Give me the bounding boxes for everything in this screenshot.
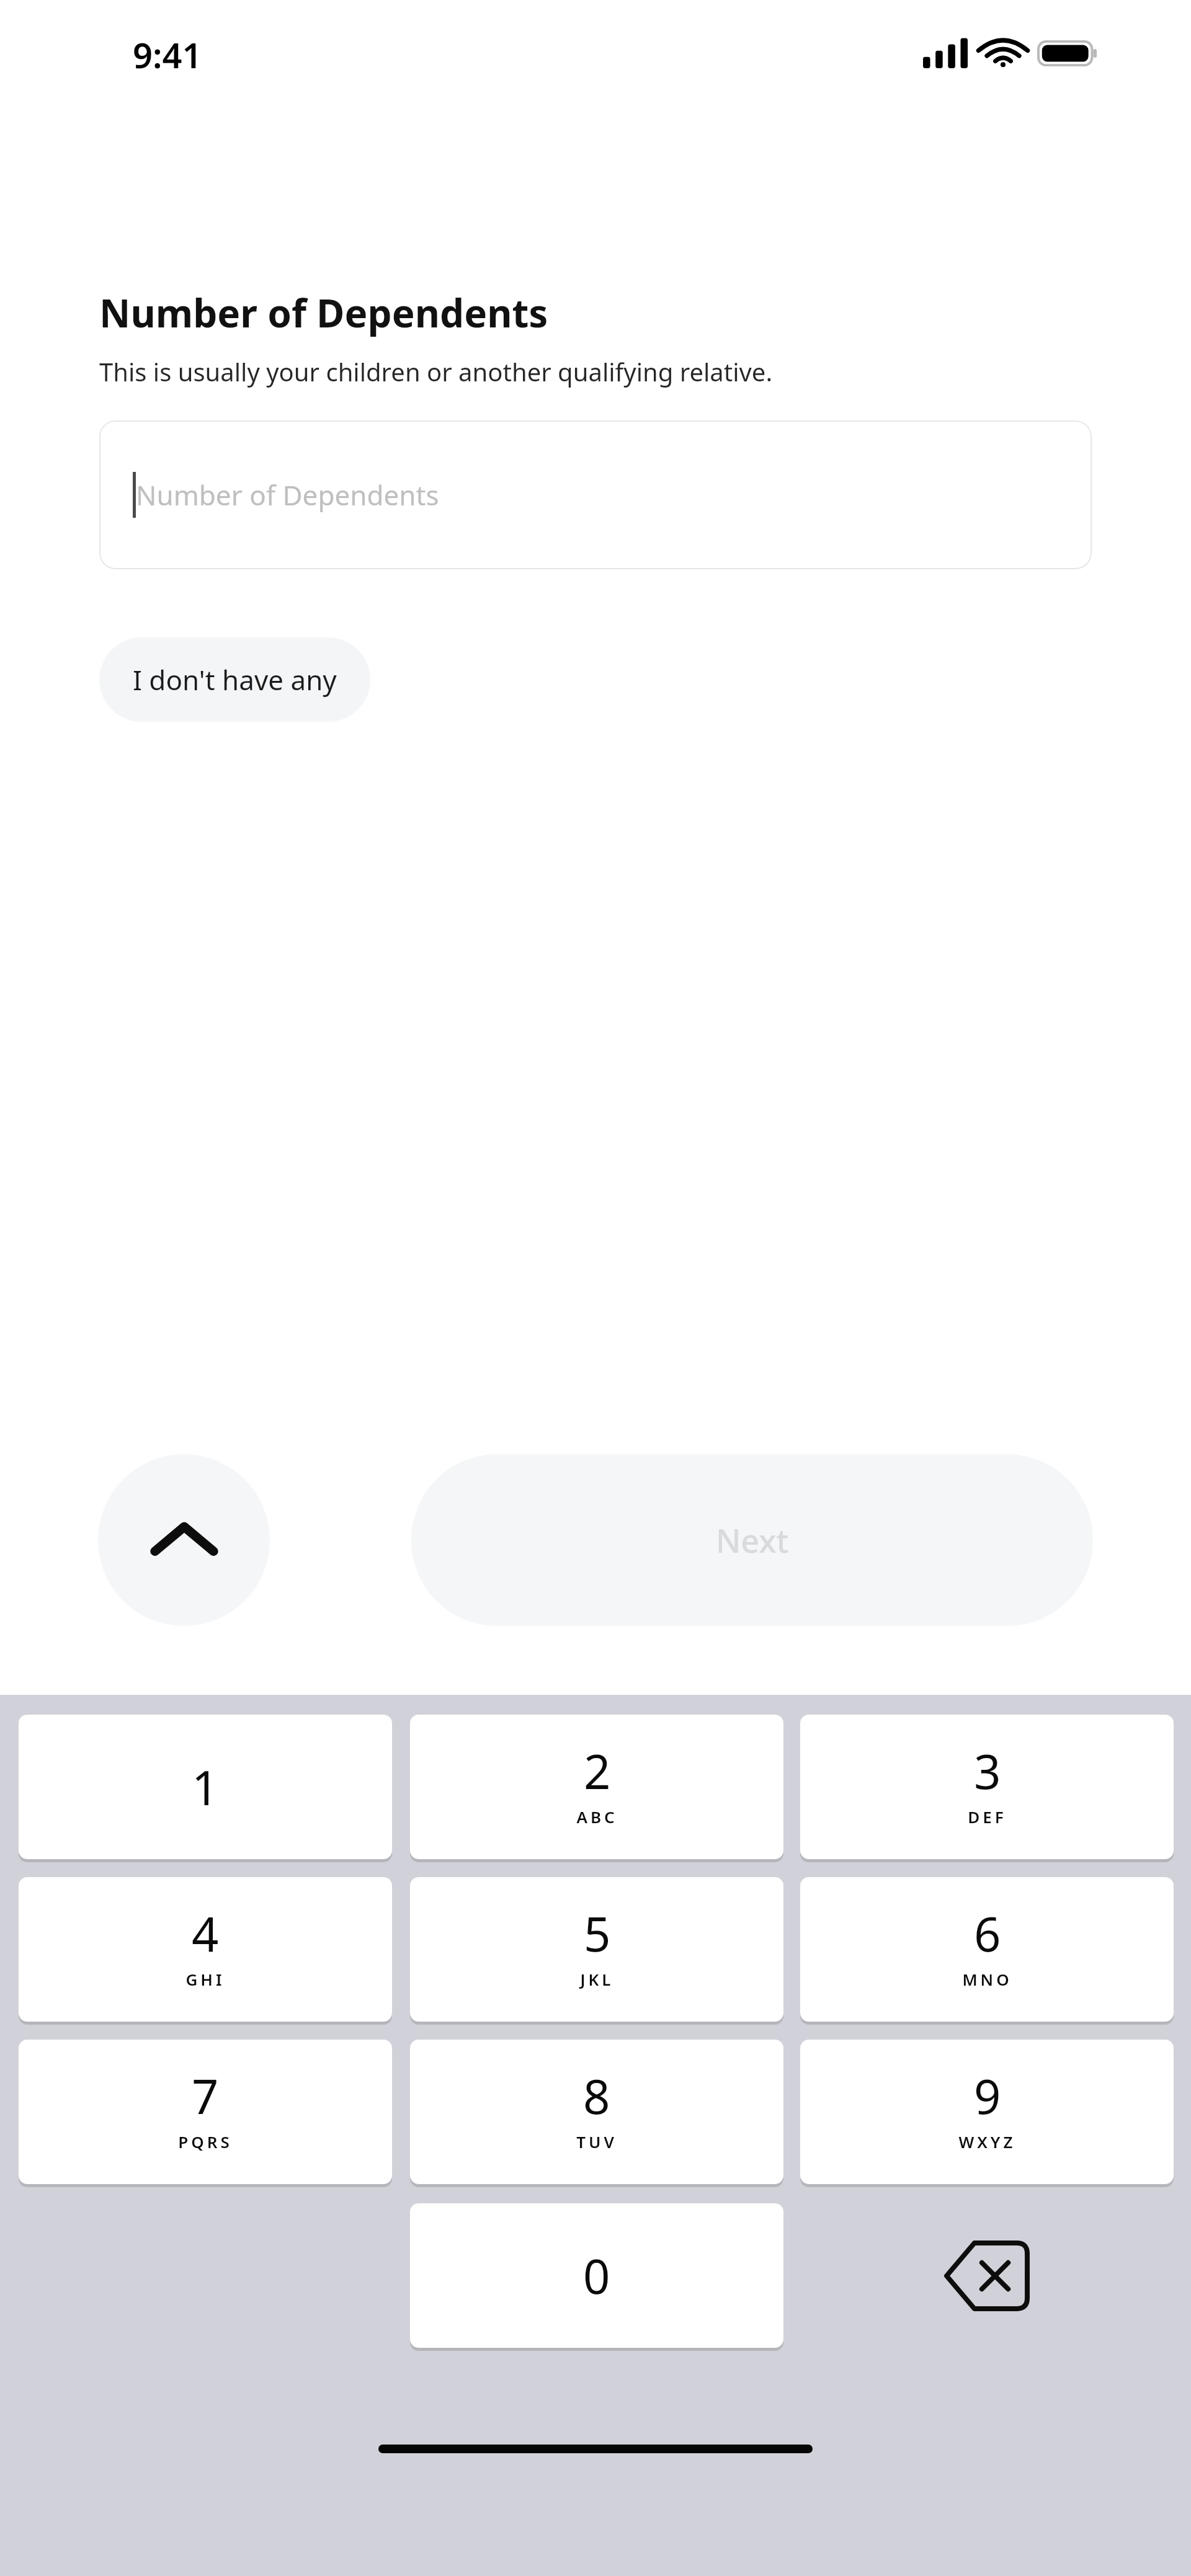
button[interactable]: Collapse [98,1454,270,1626]
staticText: 2 [584,1739,611,1803]
staticText: MNO [962,1968,1012,1990]
staticText: GHI [185,1968,225,1990]
staticText: 9:41 [133,31,202,78]
button[interactable]: I don't have any [99,637,370,722]
staticText: DEF [968,1806,1007,1828]
staticText: JKL [580,1968,614,1990]
staticText: 3 [974,1739,1001,1803]
staticText: This is usually your children or another… [99,355,773,388]
button[interactable]: Delete [800,2203,1174,2348]
staticText: 5 [584,1901,611,1966]
staticText: 8 [583,2064,610,2128]
staticText: 1 [192,1755,219,1819]
staticText: WXYZ [958,2131,1016,2152]
button[interactable]: Number of Dependents [99,420,1092,569]
button[interactable]: 9 [800,2040,1174,2184]
staticText: 9 [974,2064,1001,2128]
staticText: Number of Dependents [99,286,548,339]
button[interactable]: 5 [410,1877,783,2022]
button[interactable]: 0 [410,2203,783,2348]
button[interactable]: 1 [19,1715,392,1859]
staticText: 0 [583,2244,610,2308]
staticText: Next [716,1518,789,1562]
staticText: PQRS [178,2131,233,2152]
staticText: TUV [576,2131,617,2152]
button[interactable]: Next [411,1454,1093,1626]
button[interactable]: 4 [19,1877,392,2022]
button[interactable]: 7 [19,2040,392,2184]
staticText: Number of Dependents [136,476,439,513]
button[interactable]: 6 [800,1877,1174,2022]
staticText: 7 [192,2064,219,2128]
staticText: ABC [576,1806,618,1828]
staticText: I don't have any [133,661,337,698]
staticText: 4 [192,1901,219,1966]
button[interactable]: 3 [800,1715,1174,1859]
staticText: 6 [974,1901,1001,1966]
button[interactable]: 8 [410,2040,783,2184]
button[interactable]: 2 [410,1715,783,1859]
